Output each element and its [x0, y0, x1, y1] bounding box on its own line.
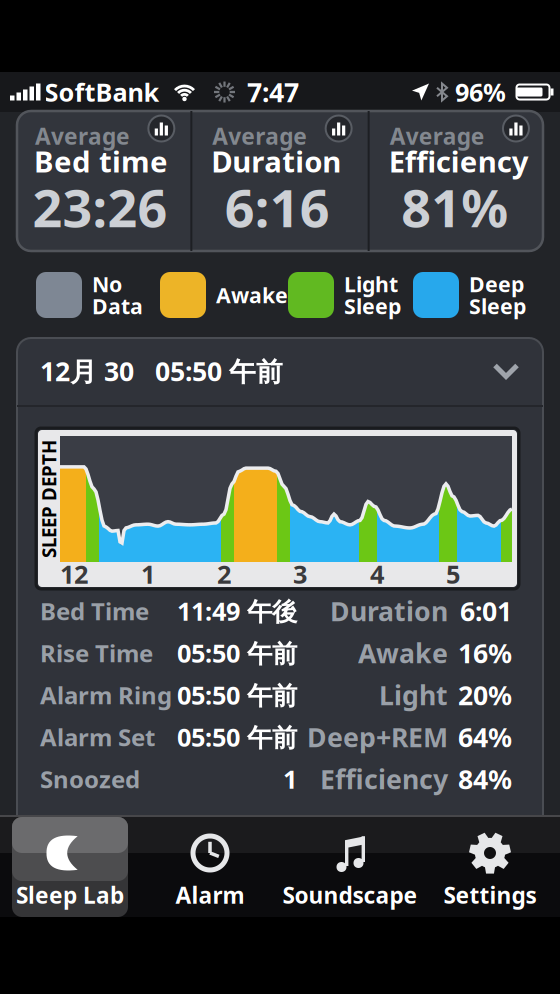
staticText: Sleep: [344, 292, 401, 320]
staticText: No: [92, 270, 122, 298]
button[interactable]: Show Efficiency chart: [500, 112, 532, 144]
staticText: 3: [293, 557, 307, 591]
staticText: Efficiency: [320, 761, 448, 797]
staticText: Snoozed: [40, 763, 140, 795]
button[interactable]: Show Duration chart: [323, 112, 355, 144]
staticText: Sleep Lab: [16, 880, 124, 910]
staticText: Settings: [443, 880, 536, 910]
staticText: 96%: [455, 75, 506, 109]
staticText: Awake: [358, 635, 448, 671]
staticText: 1: [283, 762, 297, 796]
staticText: 1: [141, 557, 155, 591]
staticText: Duration: [211, 141, 341, 180]
staticText: Light: [344, 270, 398, 298]
staticText: Bed Time: [40, 595, 149, 627]
staticText: Rise Time: [40, 637, 153, 669]
button[interactable]: Select night: [17, 338, 543, 404]
staticText: 11:49 午後: [177, 594, 297, 628]
staticText: Alarm Set: [40, 721, 155, 753]
staticText: 05:50 午前: [177, 636, 297, 670]
staticText: 05:50 午前: [177, 678, 297, 712]
staticText: Efficiency: [389, 141, 529, 180]
button[interactable]: Soundscape: [280, 815, 420, 917]
staticText: Average: [212, 121, 307, 151]
staticText: Soundscape: [282, 880, 417, 910]
staticText: 12: [60, 557, 88, 591]
staticText: Average: [35, 121, 130, 151]
staticText: Average: [390, 121, 485, 151]
staticText: Deep: [469, 270, 524, 298]
staticText: 6:16: [225, 172, 330, 242]
staticText: 81%: [401, 172, 508, 242]
button[interactable]: Settings: [420, 815, 560, 917]
staticText: Alarm Ring: [40, 679, 172, 711]
staticText: Awake: [216, 281, 288, 309]
staticText: 5: [446, 557, 460, 591]
staticText: SLEEP DEPTH: [0, 487, 108, 511]
staticText: 23:26: [32, 172, 167, 242]
button[interactable]: Sleep Lab: [0, 815, 140, 917]
staticText: 64%: [458, 719, 512, 755]
staticText: 16%: [458, 635, 512, 671]
staticText: 4: [370, 557, 384, 591]
staticText: Bed time: [34, 141, 168, 180]
button[interactable]: Show Bed time chart: [145, 112, 177, 144]
staticText: 12月 30 05:50 午前: [40, 353, 283, 389]
staticText: Deep+REM: [307, 719, 448, 755]
staticText: 2: [217, 557, 231, 591]
staticText: 6:01: [460, 593, 512, 629]
staticText: Sleep: [469, 292, 526, 320]
staticText: Alarm: [175, 880, 244, 910]
staticText: 05:50 午前: [177, 720, 297, 754]
staticText: Data: [92, 292, 143, 320]
staticText: SoftBank: [44, 75, 159, 109]
staticText: 84%: [458, 761, 512, 797]
staticText: 20%: [458, 677, 512, 713]
staticText: 7:47: [247, 74, 299, 110]
button[interactable]: Alarm: [140, 815, 280, 917]
staticText: Light: [379, 677, 448, 713]
staticText: Duration: [330, 593, 448, 629]
